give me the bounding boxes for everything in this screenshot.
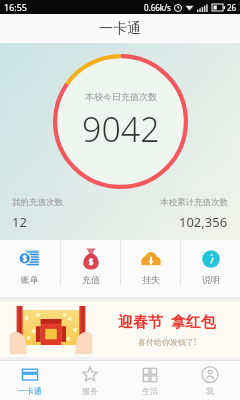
button[interactable]: 生活 — [120, 361, 180, 400]
staticText: 一卡通 — [99, 20, 141, 38]
button[interactable]: 说明 — [181, 240, 240, 297]
button[interactable]: 我 — [180, 361, 240, 400]
staticText: 我 — [206, 386, 214, 396]
staticText: 16:55 — [4, 1, 28, 13]
button[interactable]: 充值 — [61, 240, 120, 297]
button[interactable]: 一卡通 — [0, 361, 60, 400]
staticText: 喜付给你发钱了! — [138, 336, 197, 347]
staticText: 充值 — [82, 274, 100, 285]
staticText: 账单 — [21, 274, 39, 285]
staticText: 说明 — [202, 274, 220, 285]
staticText: 我的充值次数 — [12, 197, 63, 208]
button[interactable]: 账单 — [0, 240, 60, 297]
staticText: 挂失 — [142, 274, 160, 285]
button[interactable]: 服务 — [60, 361, 120, 400]
button[interactable]: 迎春节 拿红包 — [0, 301, 240, 357]
staticText: 0.66k/s — [144, 2, 171, 13]
staticText: 102,356 — [179, 213, 228, 231]
staticText: 一卡通 — [18, 386, 42, 396]
staticText: 本校累计充值次数 — [160, 197, 228, 208]
staticText: 9042 — [82, 106, 160, 152]
button[interactable]: 挂失 — [121, 240, 180, 297]
staticText: 26 — [227, 2, 237, 13]
staticText: 12 — [12, 213, 27, 231]
staticText: 生活 — [142, 386, 158, 396]
staticText: 本校今日充值次数 — [85, 91, 157, 102]
staticText: 迎春节 拿红包 — [118, 311, 216, 331]
staticText: 服务 — [82, 386, 98, 396]
